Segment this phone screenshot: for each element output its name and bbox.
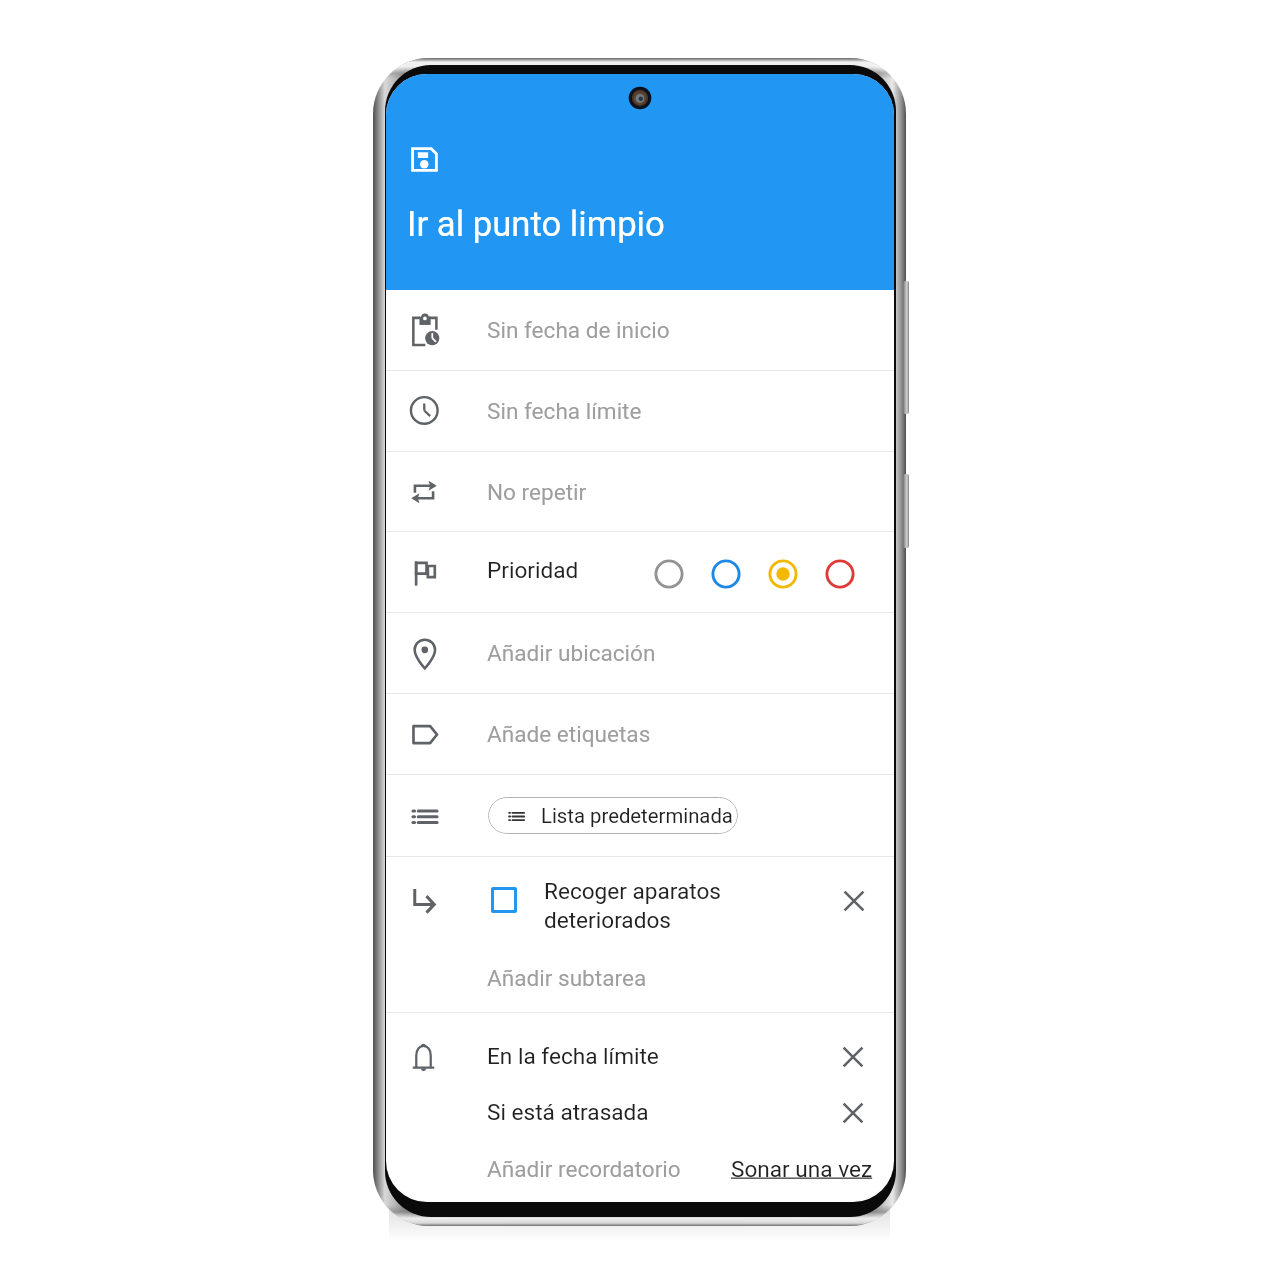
staticText: Sin fecha de inicio [487,317,670,343]
staticText: Ir al punto limpio [407,204,665,245]
button[interactable]: Guardar [397,132,451,186]
button[interactable]: Lista predeterminada [488,797,738,834]
button[interactable]: No repetir [386,452,894,531]
staticText: Añadir ubicación [487,640,656,666]
button[interactable]: Prioridad [754,545,811,602]
button[interactable]: Añade etiquetas [386,694,894,774]
button[interactable]: Añadir subtarea [386,945,894,1005]
button[interactable]: Si está atrasada [386,1089,894,1145]
staticText: Si está atrasada [487,1099,649,1125]
button[interactable]: Sonar una vez [731,1156,873,1182]
button[interactable]: Sin fecha límite [386,371,894,451]
staticText: Recoger aparatos deteriorados [544,878,722,933]
staticText: Añadir subtarea [487,965,647,991]
staticText: Lista predeterminada [541,804,733,828]
button[interactable]: Añadir recordatorio [487,1156,681,1182]
button[interactable]: Prioridad [640,545,697,602]
staticText: Añade etiquetas [487,721,651,747]
button[interactable]: Eliminar recordatorio [834,1038,872,1076]
staticText: Sin fecha límite [487,398,642,424]
button[interactable]: Prioridad [811,545,868,602]
button[interactable]: Añadir ubicación [386,613,894,693]
staticText: No repetir [487,479,587,505]
staticText: Prioridad [487,557,579,583]
button[interactable]: Marcar subtarea [491,887,517,913]
button[interactable]: Eliminar subtarea [836,883,872,919]
staticText: En la fecha límite [487,1043,659,1069]
button[interactable]: En la fecha límite [386,1013,894,1089]
button[interactable]: Sin fecha de inicio [386,290,894,370]
button[interactable]: Eliminar recordatorio [834,1094,872,1132]
button[interactable]: Prioridad [697,545,754,602]
